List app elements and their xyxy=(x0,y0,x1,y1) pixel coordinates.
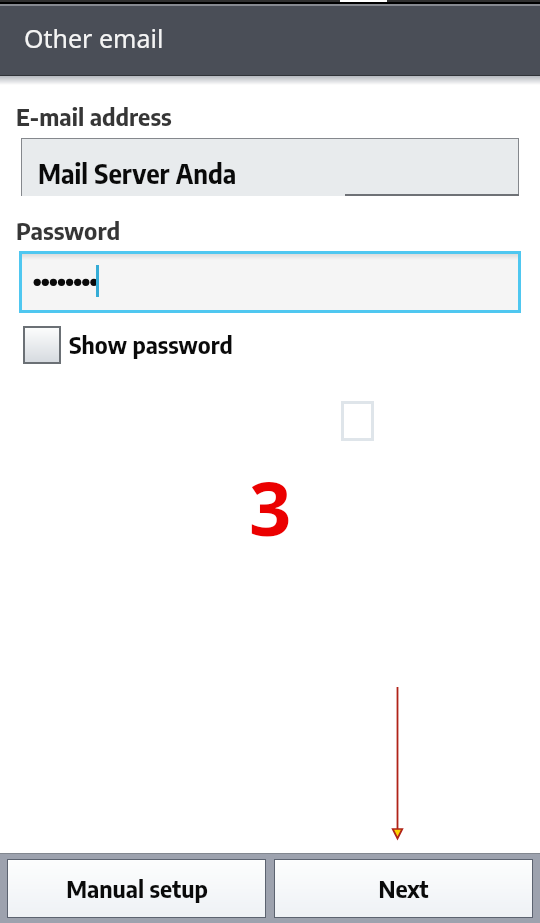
staticText: Other email xyxy=(24,21,164,55)
staticText: Mail Server Anda xyxy=(38,157,237,189)
button[interactable]: Manual setup xyxy=(7,859,266,918)
button[interactable]: Mail Server Anda xyxy=(21,138,519,196)
button[interactable] xyxy=(19,251,521,313)
button[interactable]: Next xyxy=(274,859,533,918)
button[interactable]: Show password xyxy=(23,326,233,364)
staticText: Password xyxy=(16,215,121,245)
staticText: Show password xyxy=(69,330,233,359)
staticText: 3 xyxy=(249,457,292,558)
staticText: E-mail address xyxy=(16,101,172,131)
staticText: Manual setup xyxy=(66,874,208,903)
staticText: Next xyxy=(378,874,429,903)
